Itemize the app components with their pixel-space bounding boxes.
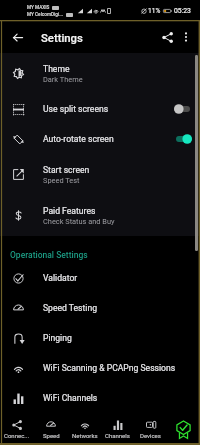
- staticText: Theme: [43, 64, 70, 74]
- button[interactable]: Speed Testing: [0, 293, 200, 323]
- staticText: WiFi Scanning & PCAPng Sessions: [43, 363, 176, 373]
- button[interactable]: Theme: [0, 53, 200, 94]
- staticText: Operational Settings: [10, 250, 88, 260]
- button[interactable]: Devices: [134, 414, 167, 445]
- staticText: Settings: [41, 32, 83, 45]
- staticText: Speed Test: [43, 176, 80, 185]
- staticText: Networks: [72, 432, 98, 439]
- button[interactable]: Back: [8, 27, 28, 47]
- staticText: 11%: [148, 7, 161, 15]
- staticText: Devices: [140, 432, 161, 439]
- staticText: Speed: [43, 432, 60, 439]
- staticText: Check Status and Buy: [43, 217, 115, 226]
- button[interactable]: Paid Features: [0, 195, 200, 236]
- button[interactable]: WiFi Channels: [0, 383, 200, 413]
- staticText: Speed Testing: [43, 303, 98, 313]
- button[interactable]: WiFi Scanning & PCAPng Sessions: [0, 353, 200, 383]
- button[interactable]: Certified: [167, 414, 200, 445]
- button[interactable]: Pinging: [0, 323, 200, 353]
- button[interactable]: Split screens off: [168, 94, 196, 124]
- button[interactable]: Use split screens: [0, 94, 200, 124]
- staticText: Paid Features: [43, 206, 96, 216]
- button[interactable]: Channels: [101, 414, 134, 445]
- staticText: 05:23: [174, 7, 191, 15]
- button[interactable]: More options: [177, 28, 195, 46]
- staticText: Use split screens: [43, 104, 109, 114]
- button[interactable]: Connec...: [0, 414, 34, 445]
- staticText: Dark Theme: [43, 75, 83, 84]
- button[interactable]: Share: [157, 27, 177, 47]
- staticText: Connec...: [4, 432, 30, 439]
- button[interactable]: Validator: [0, 263, 200, 293]
- button[interactable]: Networks: [68, 414, 101, 445]
- staticText: MY MAXIS: [27, 5, 50, 11]
- staticText: Validator: [43, 273, 78, 283]
- button[interactable]: Auto-rotate screen: [0, 124, 200, 154]
- button[interactable]: Start screen: [0, 154, 200, 195]
- staticText: Pinging: [43, 333, 72, 343]
- staticText: Channels: [105, 432, 130, 439]
- staticText: Start screen: [43, 165, 90, 175]
- button[interactable]: Auto-rotate on: [168, 124, 196, 154]
- staticText: MY CelcomDigi...: [27, 12, 64, 18]
- button[interactable]: Speed: [34, 414, 68, 445]
- staticText: Auto-rotate screen: [43, 134, 114, 144]
- staticText: WiFi Channels: [43, 393, 98, 403]
